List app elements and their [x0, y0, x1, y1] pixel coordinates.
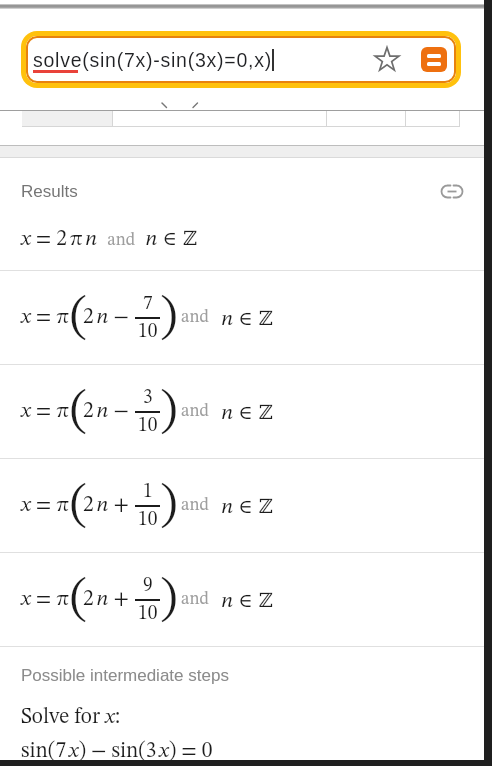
staticText: 2 n + [83, 495, 135, 517]
staticText: ) [160, 575, 172, 625]
button[interactable]: solve(sin(7x)-sin(3x)=0,x) [26, 36, 456, 83]
button[interactable]: x = 2 π n and n ∈ ℤ [0, 207, 484, 270]
staticText: ( [70, 387, 83, 437]
button[interactable]: x = π [0, 271, 484, 364]
staticText: Solve for x: [21, 707, 121, 729]
staticText: 10 [138, 604, 158, 624]
staticText: 7 [143, 294, 153, 314]
staticText: 2 n + [83, 589, 135, 611]
staticText: and [181, 403, 209, 421]
button[interactable]: Results [21, 176, 463, 206]
staticText: 3 [143, 388, 153, 408]
staticText: x = π [21, 307, 70, 329]
staticText: n ∈ ℤ [221, 589, 274, 612]
staticText: x = π [21, 589, 70, 611]
staticText: x = π [21, 401, 70, 423]
staticText: x = π [21, 495, 70, 517]
button[interactable]: Possible intermediate steps [21, 666, 229, 685]
staticText: 10 [138, 416, 158, 436]
staticText: and [181, 497, 209, 515]
staticText: 2 n − [83, 401, 135, 423]
staticText: ( [70, 481, 83, 531]
staticText: ) [160, 481, 172, 531]
staticText: n ∈ ℤ [221, 307, 274, 330]
staticText: Results [21, 182, 78, 201]
button[interactable] [372, 45, 402, 75]
staticText: 10 [138, 510, 158, 530]
button[interactable] [421, 47, 447, 72]
button[interactable]: x = π [0, 459, 484, 552]
button[interactable]: x = π [0, 553, 484, 646]
staticText: and [181, 309, 209, 327]
staticText: ( [70, 575, 83, 625]
staticText: 1 [143, 482, 153, 502]
staticText: ( [70, 293, 83, 343]
staticText: 9 [143, 576, 153, 596]
staticText: 10 [138, 322, 158, 342]
staticText: and [181, 591, 209, 609]
staticText: n ∈ ℤ [221, 495, 274, 518]
button[interactable]: x = π [0, 365, 484, 458]
staticText: n ∈ ℤ [221, 401, 274, 424]
staticText: ) [160, 387, 172, 437]
staticText: 2 n − [83, 307, 135, 329]
staticText: sin(7 x) − sin(3 x) = 0 [21, 741, 213, 763]
staticText: solve(sin(7x)-sin(3x)=0,x) [33, 49, 272, 71]
staticText: ) [160, 293, 172, 343]
staticText: x = 2 π n and n ∈ ℤ [21, 227, 198, 250]
